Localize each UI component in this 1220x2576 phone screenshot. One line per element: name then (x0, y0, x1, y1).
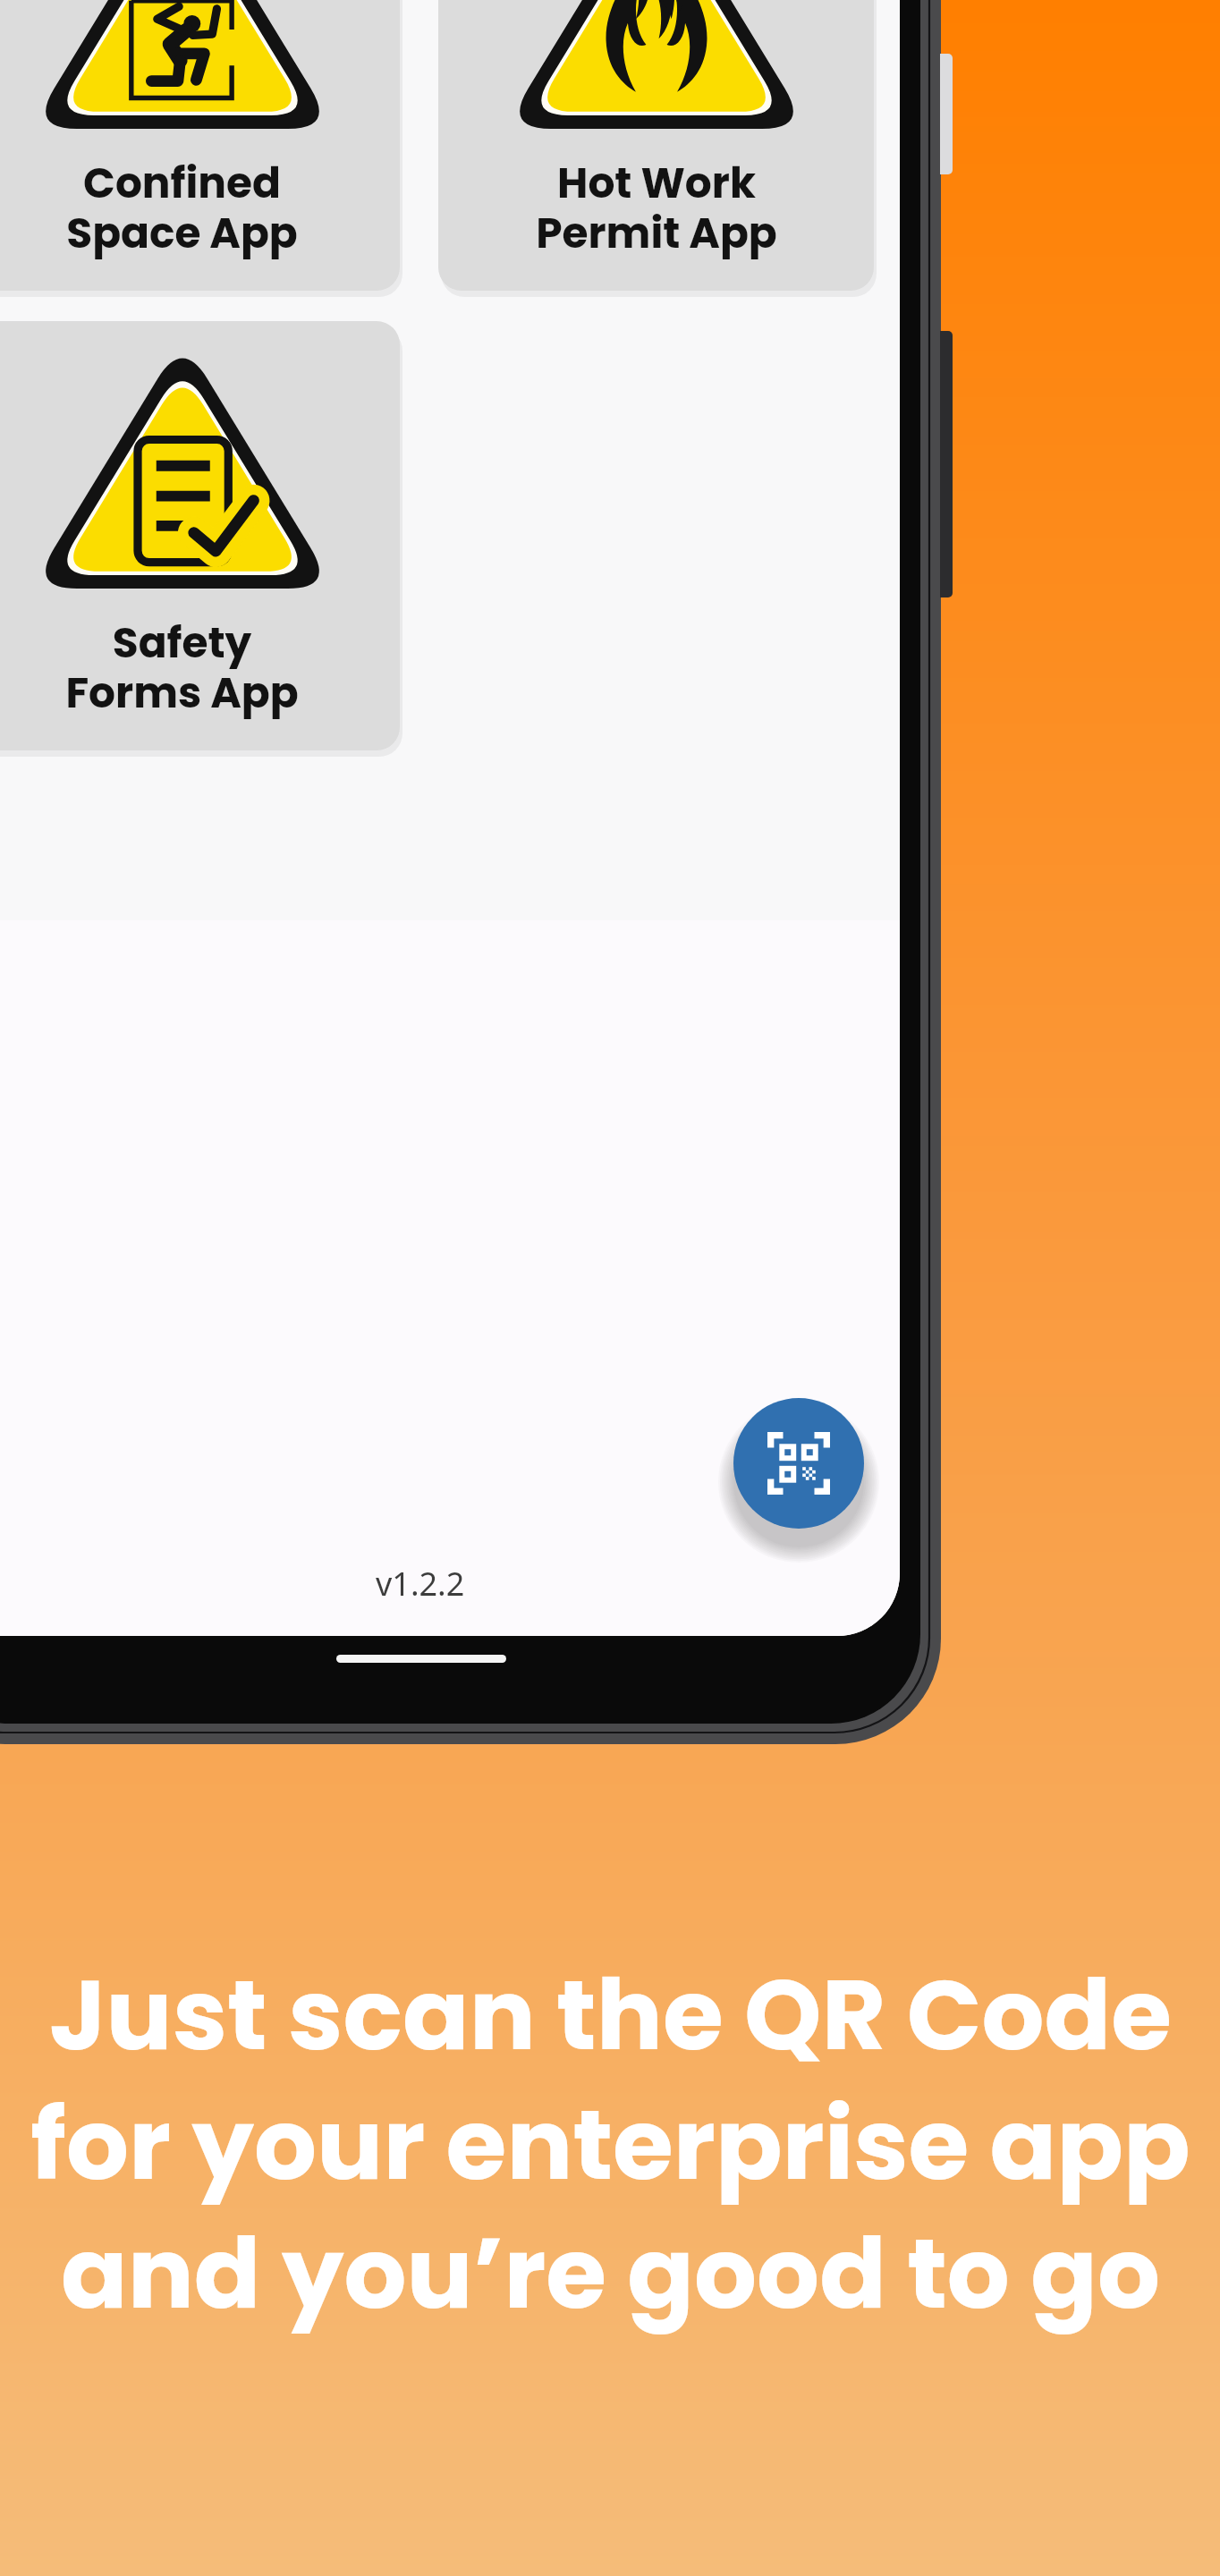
staticText: Just scan the QR Code for your enterpris… (30, 1946, 1190, 2342)
button[interactable]: Scan QR code (733, 1398, 864, 1529)
button[interactable]: Confined Space App (0, 0, 400, 291)
button[interactable]: Safety Forms App (0, 321, 400, 750)
staticText: Safety Forms App (65, 614, 299, 723)
staticText: Hot Work Permit App (536, 154, 777, 263)
staticText: v1.2.2 (376, 1562, 465, 1606)
staticText: Confined Space App (66, 154, 298, 263)
button[interactable]: Hot Work Permit App (438, 0, 874, 291)
